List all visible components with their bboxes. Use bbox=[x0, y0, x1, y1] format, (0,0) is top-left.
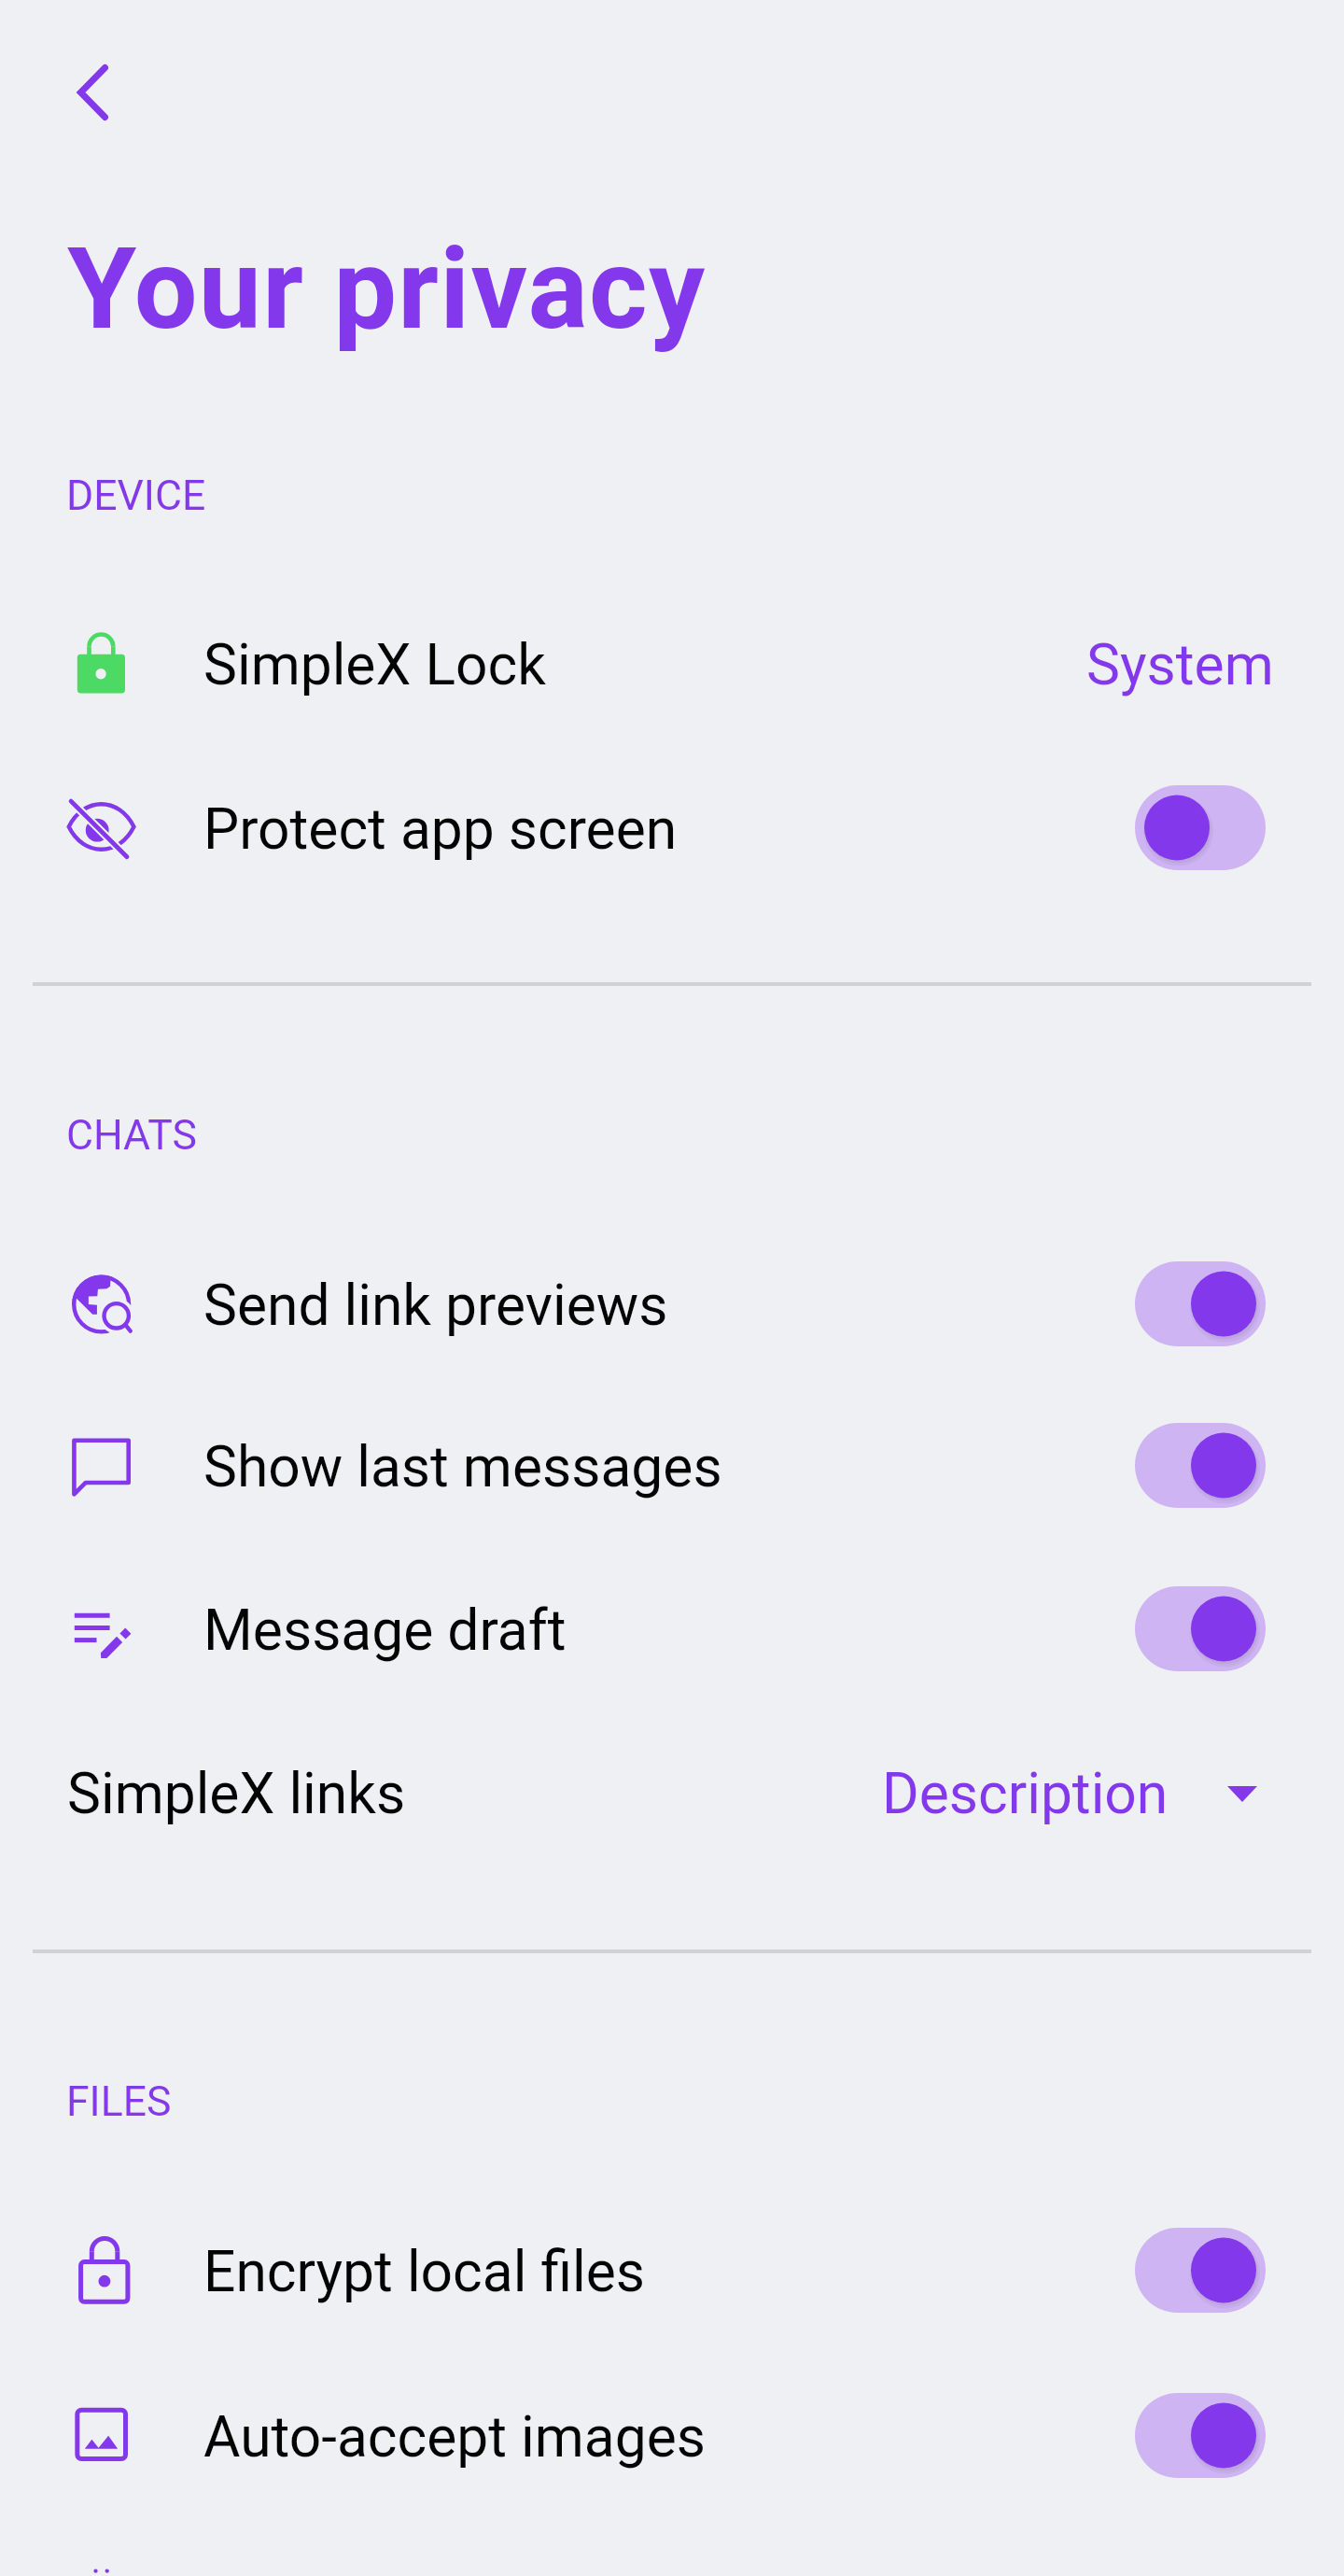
staticText: System bbox=[1086, 632, 1274, 698]
button[interactable]: Back bbox=[25, 25, 160, 160]
button[interactable]: Encrypt local files bbox=[0, 2189, 1344, 2354]
button[interactable]: Send link previews bbox=[0, 1223, 1344, 1387]
button[interactable]: Toggle bbox=[1135, 1586, 1266, 1671]
button[interactable]: Toggle bbox=[1135, 785, 1266, 870]
staticText: FILES bbox=[66, 2077, 172, 2126]
button[interactable]: Protect app screen bbox=[0, 747, 1344, 911]
button[interactable]: Toggle bbox=[1135, 2393, 1266, 2478]
staticText: Message draft bbox=[203, 1598, 567, 1664]
staticText: Send link previews bbox=[203, 1273, 668, 1339]
staticText: Protect app screen bbox=[203, 796, 678, 863]
staticText: Description bbox=[882, 1761, 1169, 1827]
staticText: Auto-accept images bbox=[203, 2404, 706, 2470]
staticText: Show last messages bbox=[203, 1434, 722, 1500]
button[interactable]: Toggle bbox=[1135, 1261, 1266, 1346]
staticText: SimpleX links bbox=[67, 1761, 406, 1827]
button[interactable]: Show last messages bbox=[0, 1385, 1344, 1549]
button[interactable]: SimpleX Lock bbox=[0, 583, 1344, 747]
staticText: Your privacy bbox=[67, 224, 707, 356]
button[interactable]: SimpleX links bbox=[0, 1711, 1344, 1876]
staticText: Encrypt local files bbox=[203, 2239, 645, 2305]
staticText: DEVICE bbox=[66, 472, 206, 520]
button[interactable]: Toggle bbox=[1135, 2228, 1266, 2313]
staticText: CHATS bbox=[66, 1111, 197, 1160]
button[interactable]: Message draft bbox=[0, 1548, 1344, 1712]
staticText: SimpleX Lock bbox=[203, 632, 546, 698]
button[interactable]: Toggle bbox=[1135, 1423, 1266, 1508]
button[interactable]: Auto-accept images bbox=[0, 2355, 1344, 2519]
